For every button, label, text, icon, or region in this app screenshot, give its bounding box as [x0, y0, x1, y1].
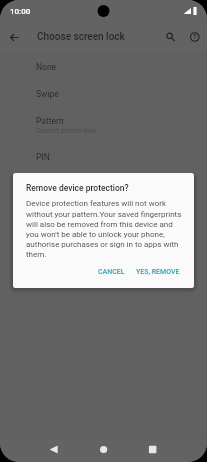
staticText: None: [36, 62, 57, 72]
staticText: Password: [36, 179, 74, 189]
staticText: Choose screen lock: [37, 31, 125, 43]
button[interactable]: Pattern: [0, 116, 207, 134]
staticText: Current screen lock: [36, 127, 97, 135]
staticText: Swipe: [36, 89, 59, 99]
staticText: YES, REMOVE: [136, 268, 180, 276]
button[interactable]: None: [0, 62, 207, 72]
button[interactable]: Swipe: [0, 89, 207, 99]
staticText: Pattern: [36, 116, 64, 126]
button[interactable]: CANCEL: [94, 265, 129, 279]
staticText: CANCEL: [98, 268, 125, 276]
staticText: ?: [193, 33, 197, 41]
staticText: PIN: [36, 152, 50, 162]
button[interactable]: PIN: [0, 152, 207, 162]
staticText: Device protection features will not work…: [26, 199, 183, 259]
button[interactable]: Search: [160, 26, 182, 48]
button[interactable]: Password: [0, 179, 207, 189]
button[interactable]: YES, REMOVE: [132, 265, 184, 279]
button[interactable]: Help: [184, 26, 206, 48]
staticText: 10:00: [10, 7, 31, 16]
staticText: Remove device protection?: [26, 183, 129, 193]
button[interactable]: Back: [4, 27, 25, 48]
